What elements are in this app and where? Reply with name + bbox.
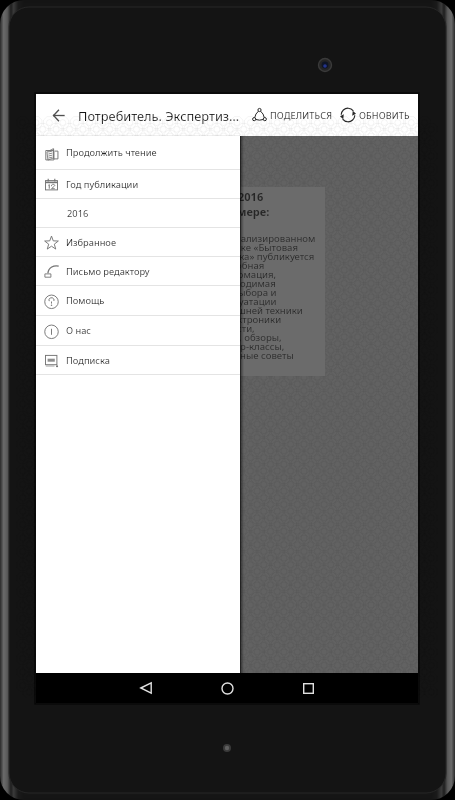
button[interactable]: Помощь (36, 286, 240, 315)
button[interactable]: Письмо редактору (36, 257, 240, 285)
staticText: Продолжить чтение (66, 146, 157, 159)
button[interactable]: 2016 (36, 199, 240, 227)
button[interactable]: Продолжить чтение (36, 136, 240, 169)
staticText: ОБНОВИТЬ (359, 109, 410, 121)
staticText: 2016 (67, 207, 89, 220)
staticText: Избранное (66, 236, 116, 249)
staticText: О нас (66, 324, 91, 337)
button[interactable]: О нас (36, 316, 240, 345)
staticText: Год публикации (66, 178, 139, 191)
button[interactable]: Избранное (36, 228, 240, 256)
button[interactable]: ПОДЕЛИТЬСЯ (252, 94, 333, 136)
staticText: Помощь (66, 294, 105, 307)
staticText: Подписка (66, 354, 110, 367)
button[interactable]: Back (131, 673, 161, 703)
button[interactable]: Recent apps (293, 673, 323, 703)
staticText: № 5/2016 (213, 189, 264, 204)
button[interactable]: Подписка (36, 346, 240, 374)
staticText: Потребитель. Экспертиз… (78, 107, 240, 124)
staticText: В номере: (213, 204, 270, 219)
staticText: ПОДЕЛИТЬСЯ (270, 109, 333, 121)
button[interactable]: Home (212, 673, 242, 703)
staticText: Письмо редактору (66, 265, 150, 278)
button[interactable]: Год публикации (36, 170, 240, 198)
button[interactable]: ОБНОВИТЬ (340, 94, 410, 136)
staticText: В специализированном выпуске «Бытовая те… (213, 223, 324, 362)
button[interactable]: Back (41, 98, 75, 132)
